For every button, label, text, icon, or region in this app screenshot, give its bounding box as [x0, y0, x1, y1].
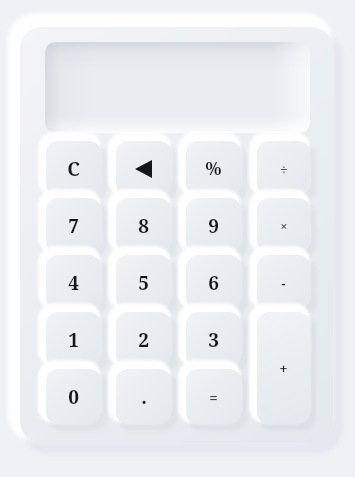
- staticText: 7: [68, 213, 79, 239]
- button[interactable]: 8: [116, 198, 171, 253]
- staticText: =: [209, 387, 218, 407]
- button[interactable]: 0: [46, 369, 101, 424]
- button[interactable]: Equals: [186, 369, 241, 424]
- button[interactable]: 3: [186, 312, 241, 367]
- button[interactable]: Minus: [257, 255, 310, 310]
- staticText: 4: [68, 270, 79, 296]
- staticText: %: [205, 156, 222, 181]
- staticText: 6: [208, 270, 219, 296]
- staticText: ×: [280, 217, 288, 235]
- staticText: C: [67, 156, 80, 182]
- button[interactable]: 1: [46, 312, 101, 367]
- button[interactable]: Backspace: [116, 141, 171, 196]
- button[interactable]: Plus: [257, 312, 310, 424]
- button[interactable]: %: [186, 141, 241, 196]
- button[interactable]: 7: [46, 198, 101, 253]
- button[interactable]: .: [116, 369, 171, 424]
- staticText: 2: [138, 327, 149, 353]
- staticText: 3: [208, 327, 219, 353]
- button[interactable]: Multiply: [257, 198, 310, 253]
- button[interactable]: 9: [186, 198, 241, 253]
- button[interactable]: 4: [46, 255, 101, 310]
- staticText: 0: [68, 384, 79, 410]
- button[interactable]: 6: [186, 255, 241, 310]
- button[interactable]: [45, 42, 310, 133]
- staticText: 9: [208, 213, 219, 239]
- other: Backspace: [135, 160, 152, 178]
- staticText: 8: [138, 213, 149, 239]
- button[interactable]: 2: [116, 312, 171, 367]
- button[interactable]: 5: [116, 255, 171, 310]
- staticText: +: [279, 358, 288, 378]
- staticText: 1: [68, 327, 79, 353]
- staticText: ÷: [280, 160, 288, 178]
- staticText: .: [141, 384, 147, 410]
- button[interactable]: Divide: [257, 141, 310, 196]
- button[interactable]: C: [46, 141, 101, 196]
- staticText: 5: [138, 270, 149, 296]
- staticText: -: [281, 274, 286, 292]
